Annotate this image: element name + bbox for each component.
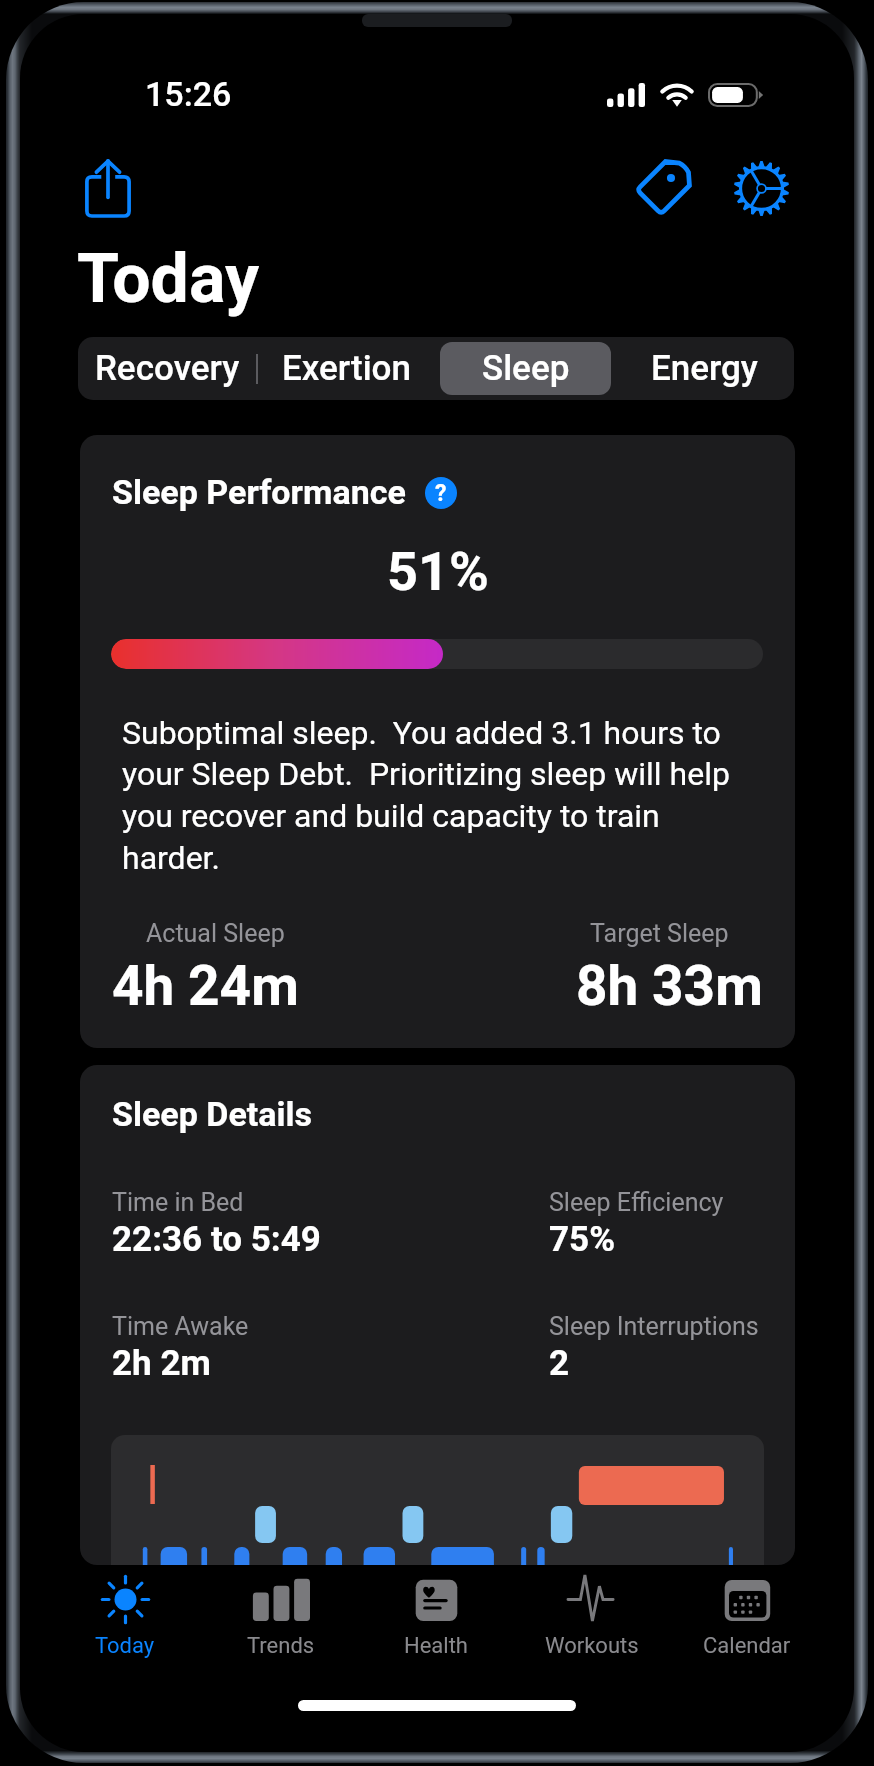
- staticText: Sleep Interruptions: [549, 1312, 759, 1341]
- button[interactable]: Exertion: [261, 342, 432, 395]
- staticText: Suboptimal sleep. You added 3.1 hours to…: [122, 714, 757, 877]
- staticText: ?: [435, 480, 447, 507]
- staticText: Exertion: [282, 348, 412, 389]
- button[interactable]: Sleep: [440, 342, 611, 395]
- button[interactable]: Calendar: [669, 1565, 825, 1690]
- staticText: 2: [549, 1343, 570, 1384]
- staticText: Sleep Details: [112, 1094, 313, 1134]
- staticText: Calendar: [703, 1633, 791, 1659]
- staticText: Trends: [247, 1633, 315, 1659]
- staticText: Health: [404, 1633, 468, 1659]
- button[interactable]: Recovery: [82, 342, 253, 395]
- staticText: Sleep Efficiency: [549, 1188, 724, 1217]
- staticText: 51%: [387, 540, 489, 603]
- staticText: 15:26: [145, 74, 232, 114]
- button[interactable]: Help: [425, 477, 457, 509]
- staticText: 4h 24m: [112, 954, 299, 1018]
- button[interactable]: Energy: [619, 342, 790, 395]
- button[interactable]: Workouts: [514, 1565, 670, 1690]
- staticText: Actual Sleep: [146, 919, 285, 948]
- staticText: Time Awake: [112, 1312, 249, 1341]
- staticText: Sleep Performance: [112, 472, 406, 512]
- staticText: 2h 2m: [112, 1343, 211, 1384]
- staticText: Today: [95, 1633, 155, 1659]
- staticText: Recovery: [95, 348, 240, 389]
- button[interactable]: Settings: [718, 144, 805, 228]
- staticText: 22:36 to 5:49: [112, 1219, 321, 1260]
- button[interactable]: Health: [358, 1565, 514, 1690]
- button[interactable]: Sleep Details: [80, 1065, 795, 1565]
- staticText: 8h 33m: [576, 954, 763, 1018]
- staticText: Energy: [651, 348, 758, 389]
- staticText: Workouts: [545, 1633, 639, 1659]
- staticText: Target Sleep: [590, 919, 729, 948]
- button[interactable]: Share: [77, 151, 139, 225]
- staticText: Time in Bed: [112, 1188, 244, 1217]
- button[interactable]: Tags: [621, 144, 707, 228]
- staticText: 75%: [549, 1219, 616, 1260]
- button[interactable]: Trends: [203, 1565, 359, 1690]
- button[interactable]: Sleep Performance: [80, 435, 795, 1048]
- button[interactable]: Today: [47, 1565, 203, 1690]
- staticText: Sleep: [482, 348, 570, 389]
- staticText: Today: [77, 239, 260, 319]
